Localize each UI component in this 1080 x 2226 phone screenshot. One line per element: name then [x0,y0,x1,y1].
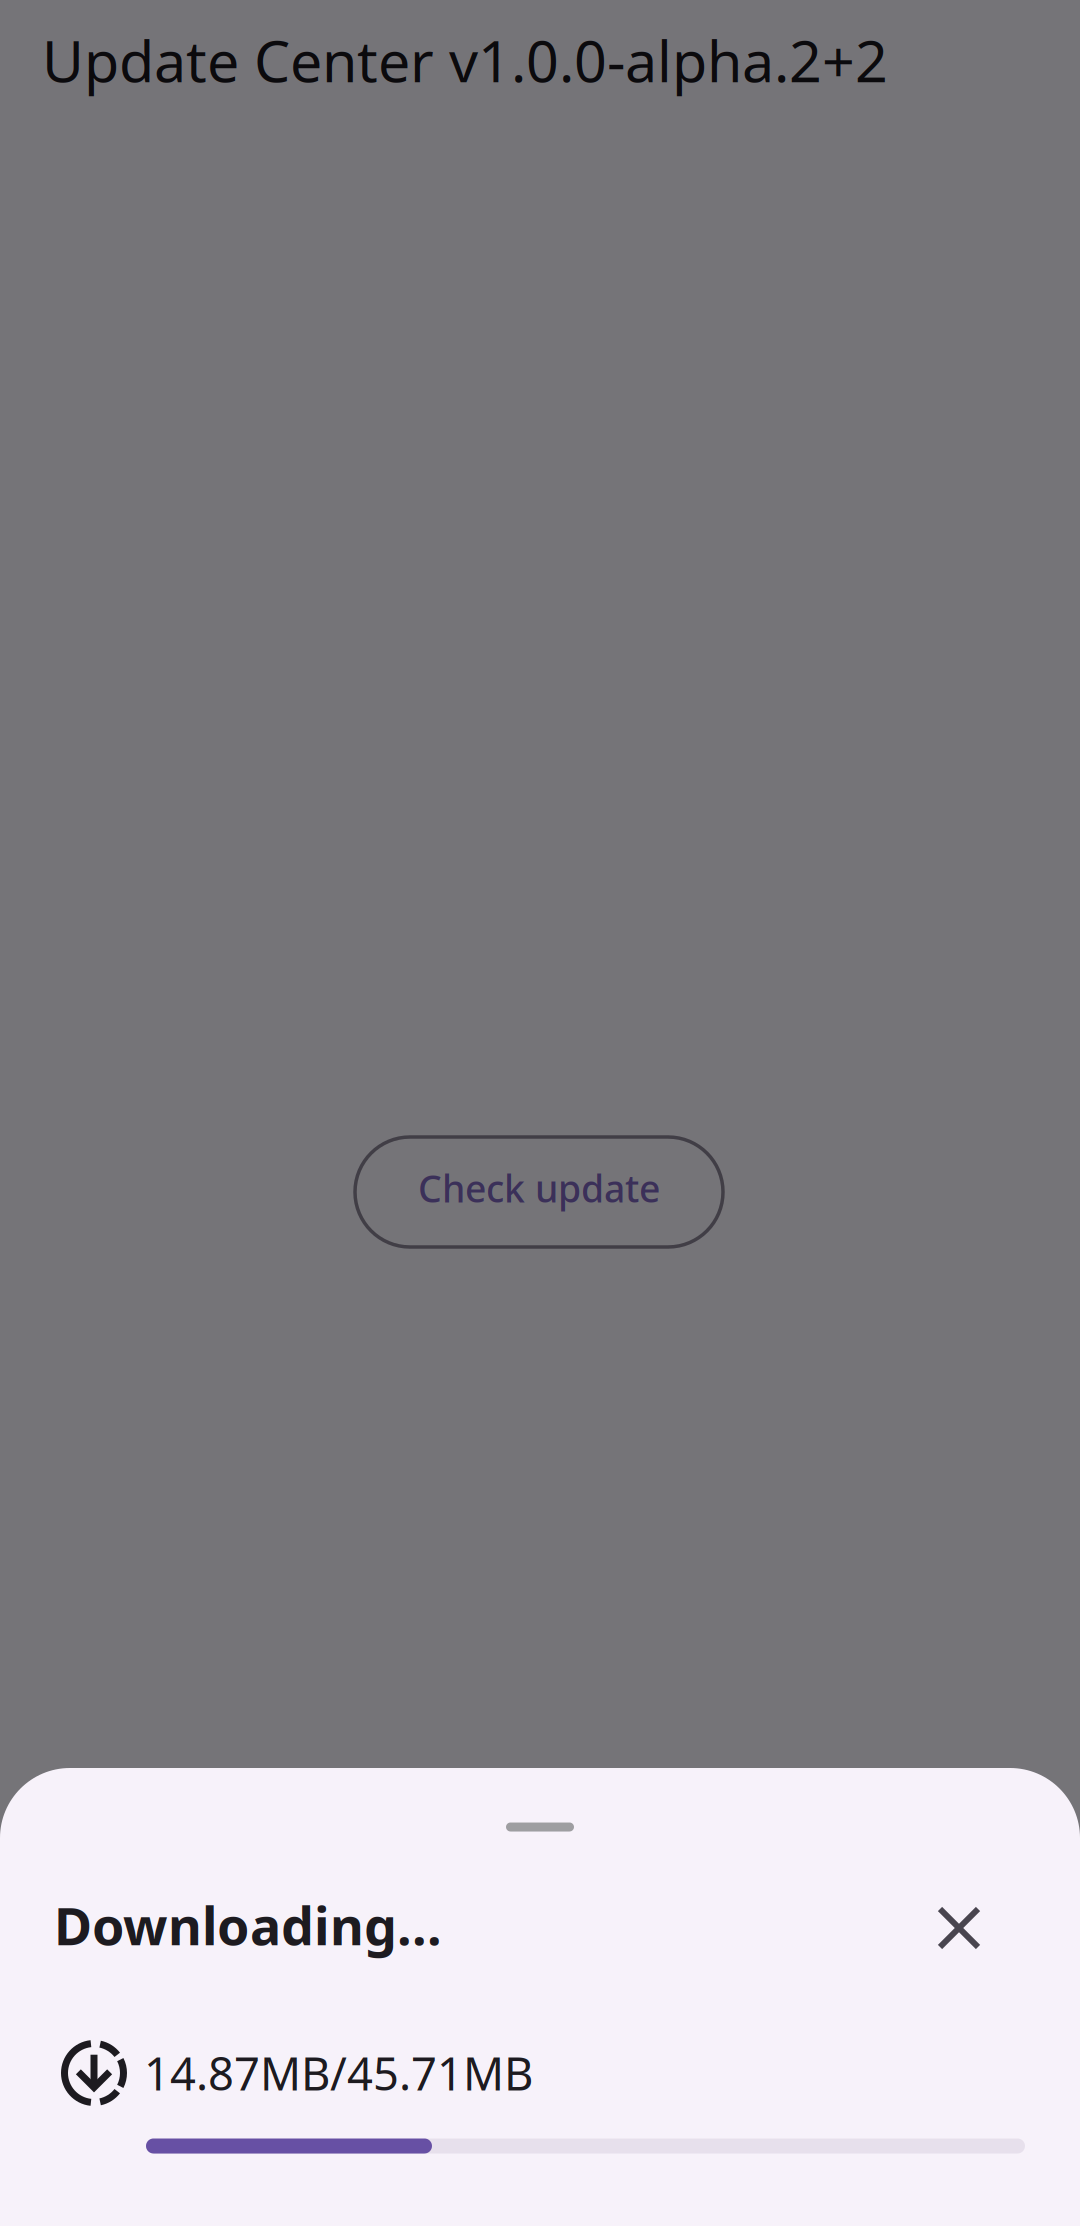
staticText: Update Center v1.0.0-alpha.2+2 [42,22,888,98]
staticText: Check update [418,1163,660,1213]
staticText: Downloading... [54,1890,442,1960]
button[interactable]: Check update [355,1137,723,1247]
staticText: 14.87MB/45.71MB [144,2043,533,2103]
button[interactable]: Close [911,1880,1007,1976]
